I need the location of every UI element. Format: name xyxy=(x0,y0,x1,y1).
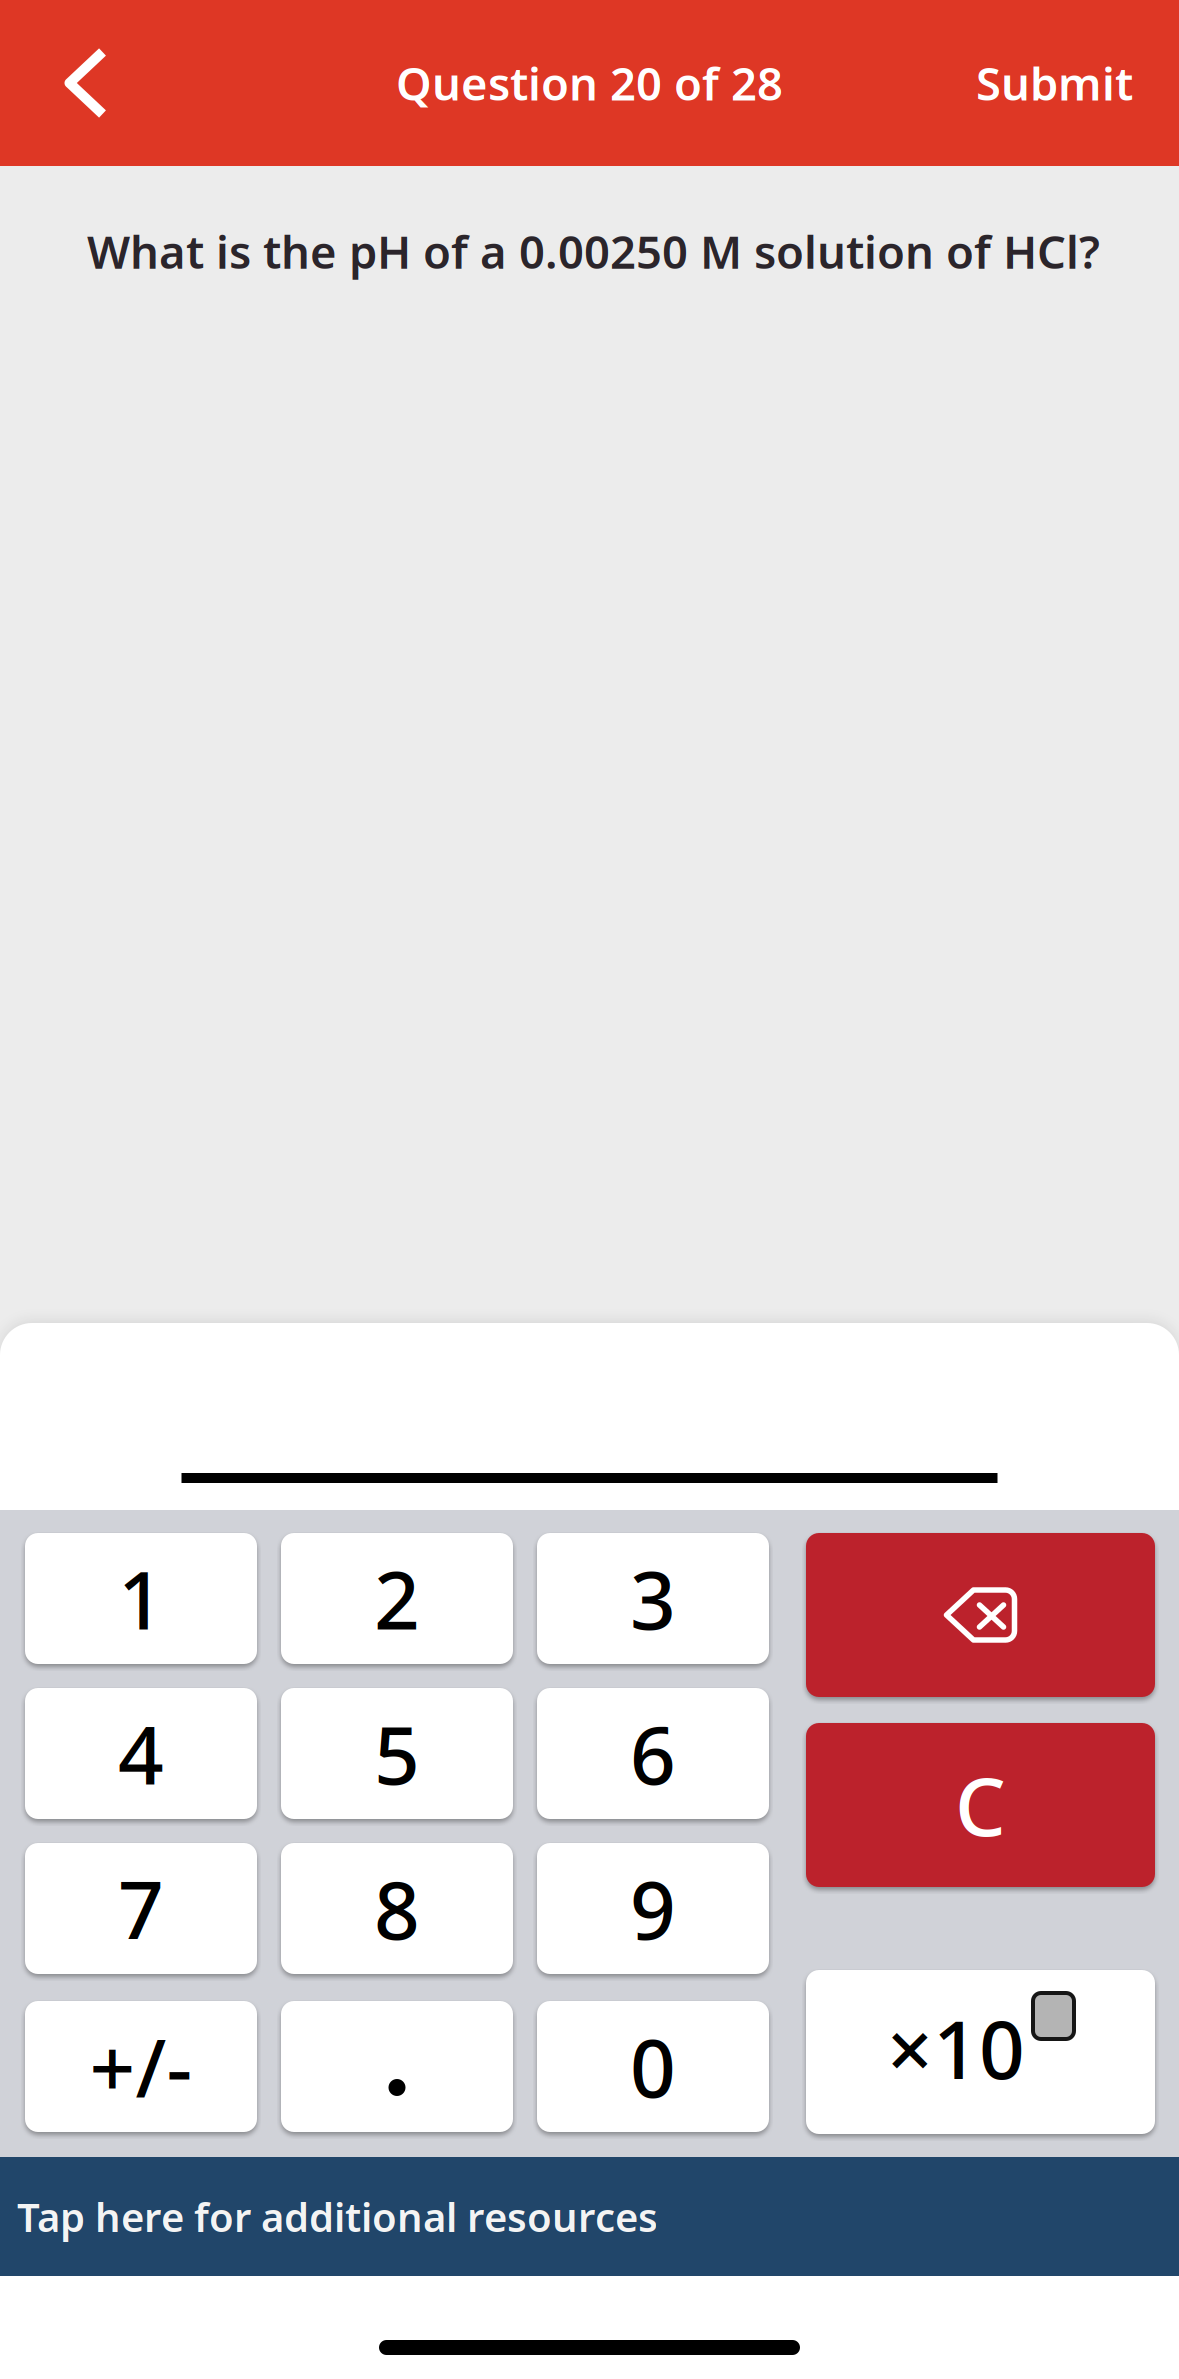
staticText: Tap here for additional resources xyxy=(17,2190,658,2243)
staticText: 3 xyxy=(630,1545,676,1652)
button[interactable]: 8 xyxy=(281,1843,513,1974)
button[interactable]: Times ten to the power xyxy=(806,1970,1155,2134)
button[interactable]: 9 xyxy=(537,1843,769,1974)
button[interactable]: Answer xyxy=(0,1323,1179,1510)
button[interactable]: 3 xyxy=(537,1533,769,1664)
staticText: 2 xyxy=(374,1545,420,1652)
staticText: 7 xyxy=(118,1855,164,1962)
button[interactable]: Back xyxy=(0,0,149,166)
staticText: Submit xyxy=(976,53,1133,113)
button[interactable]: Decimal point xyxy=(281,2001,513,2132)
button[interactable]: 5 xyxy=(281,1688,513,1819)
button[interactable]: +/- xyxy=(25,2001,257,2132)
staticText: 9 xyxy=(630,1855,676,1962)
button[interactable]: C xyxy=(806,1723,1155,1887)
staticText: 4 xyxy=(118,1700,164,1807)
button[interactable]: 1 xyxy=(25,1533,257,1664)
staticText: 5 xyxy=(374,1700,420,1807)
button[interactable]: Delete xyxy=(806,1533,1155,1697)
button[interactable]: Submit xyxy=(976,0,1179,166)
staticText: C xyxy=(955,1752,1006,1858)
staticText: 1 xyxy=(118,1545,164,1652)
button[interactable]: Tap here for additional resources xyxy=(0,2157,1179,2276)
button[interactable]: 0 xyxy=(537,2001,769,2132)
staticText: 8 xyxy=(374,1855,420,1962)
button[interactable]: 2 xyxy=(281,1533,513,1664)
button[interactable]: 4 xyxy=(25,1688,257,1819)
staticText: ×10 xyxy=(887,1995,1025,2101)
staticText: 0 xyxy=(630,2013,676,2120)
staticText: Question 20 of 28 xyxy=(396,53,783,113)
staticText: +/- xyxy=(89,2013,192,2120)
staticText: What is the pH of a 0.00250 M solution o… xyxy=(87,221,1100,281)
staticText: 6 xyxy=(630,1700,676,1807)
button[interactable]: 6 xyxy=(537,1688,769,1819)
button[interactable]: 7 xyxy=(25,1843,257,1974)
